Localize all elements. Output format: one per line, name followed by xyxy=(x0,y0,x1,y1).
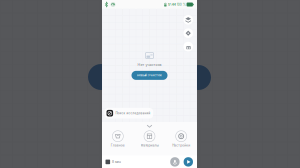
staticText: Материалы xyxy=(140,143,158,147)
button[interactable]: Play xyxy=(184,157,193,167)
staticText: 8 мин xyxy=(112,160,121,164)
button[interactable]: Поиск исследований xyxy=(104,108,153,118)
button[interactable]: Microphone xyxy=(170,157,180,167)
button[interactable]: Locate xyxy=(183,28,193,38)
staticText: 100 % xyxy=(177,3,186,6)
button[interactable]: Материалы xyxy=(134,131,165,147)
staticText: Нет участков xyxy=(137,62,161,67)
staticText: Настройки xyxy=(172,143,190,147)
button[interactable]: Measure xyxy=(183,42,193,51)
button[interactable]: Главное xyxy=(102,131,134,147)
staticText: Главное xyxy=(111,143,125,147)
staticText: Поиск исследований xyxy=(116,111,151,115)
button[interactable]: НОВЫЙ УЧАСТОК xyxy=(131,71,167,80)
staticText: 17:44 xyxy=(168,2,176,7)
button[interactable]: Настройки xyxy=(165,131,197,147)
button[interactable]: Layers xyxy=(183,15,193,25)
staticText: НОВЫЙ УЧАСТОК xyxy=(137,74,162,77)
